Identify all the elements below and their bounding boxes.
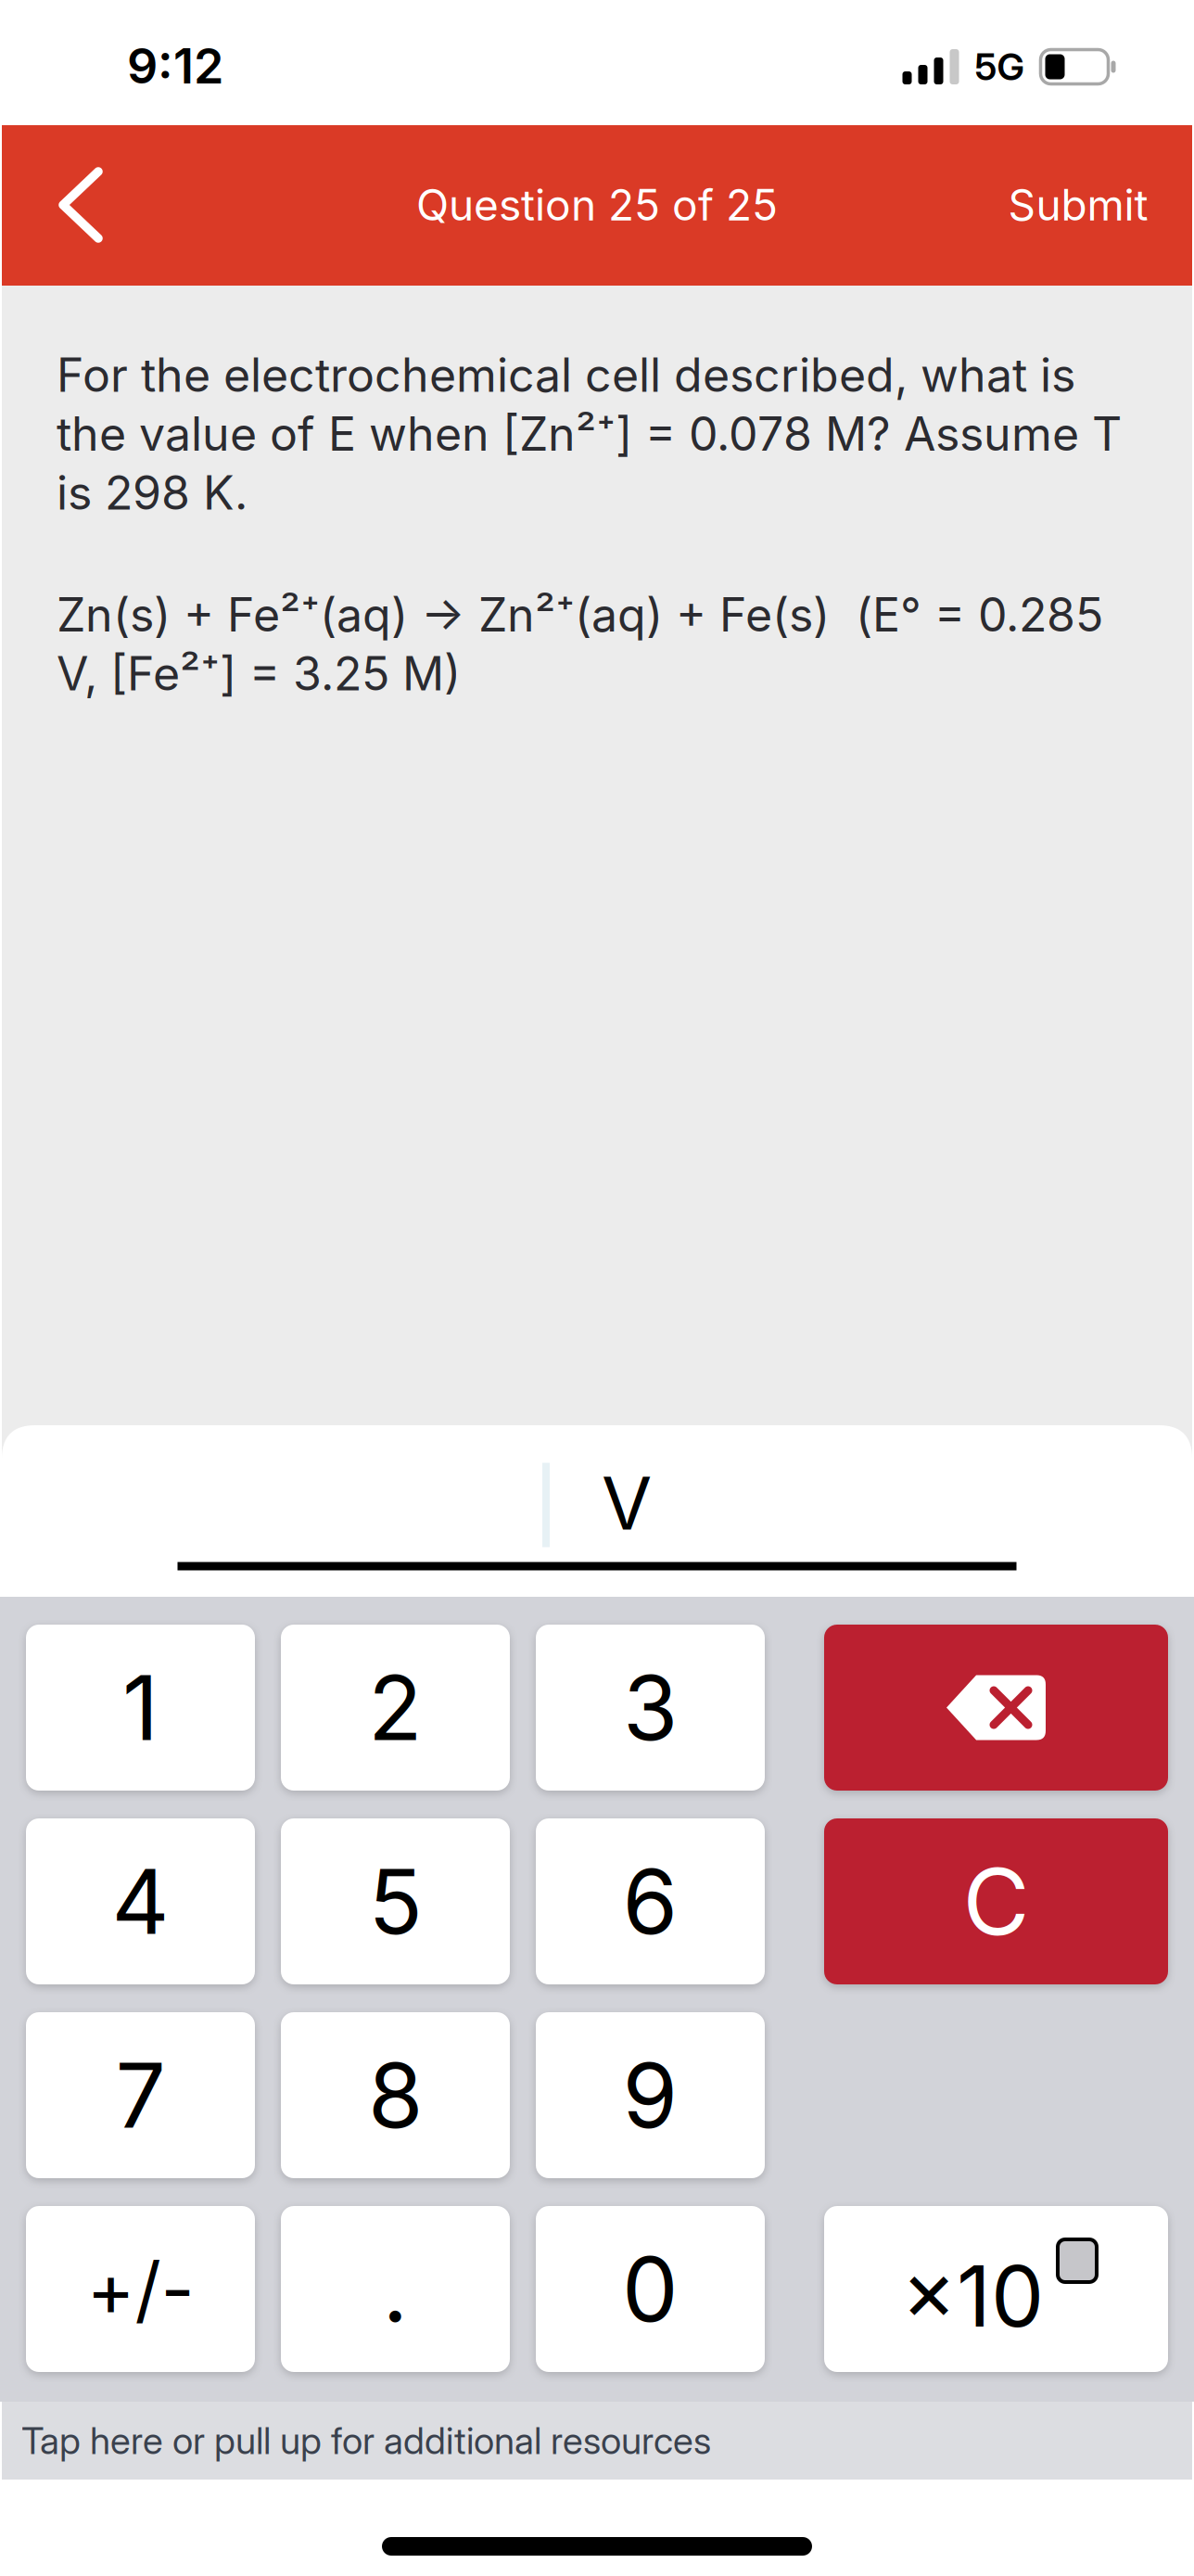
button[interactable]: Submit <box>2 125 1192 286</box>
button[interactable]: ×10 <box>824 2206 1168 2372</box>
button[interactable]: 1 <box>26 1625 255 1791</box>
button[interactable]: 5 <box>281 1818 510 1984</box>
staticText: 0 <box>622 2235 679 2343</box>
staticText: 3 <box>623 1654 678 1761</box>
staticText: 2 <box>368 1654 423 1761</box>
button[interactable]: . <box>281 2206 510 2372</box>
staticText: Zn(s) + Fe²⁺(aq) → Zn²⁺(aq) + Fe(s) (E° … <box>57 587 1103 701</box>
staticText: 5 <box>368 1848 422 1955</box>
button[interactable]: 2 <box>281 1625 510 1791</box>
staticText: Tap here or pull up for additional resou… <box>21 2418 711 2463</box>
staticText: ×10 <box>901 2245 1044 2347</box>
staticText: 4 <box>112 1848 169 1955</box>
staticText: 8 <box>368 2041 423 2149</box>
button[interactable]: 8 <box>281 2012 510 2178</box>
staticText: 7 <box>115 2041 165 2149</box>
button[interactable]: 4 <box>26 1818 255 1984</box>
button[interactable]: +/- <box>26 2206 255 2372</box>
button[interactable] <box>2 125 1192 286</box>
staticText: 9 <box>622 2041 678 2149</box>
staticText: 5G <box>975 44 1024 89</box>
staticText: Question 25 of 25 <box>416 179 778 231</box>
staticText: 6 <box>622 1848 678 1955</box>
button[interactable] <box>824 1625 1168 1791</box>
staticText: Submit <box>1008 179 1148 231</box>
staticText: C <box>963 1846 1029 1957</box>
staticText: . <box>382 2235 408 2343</box>
button[interactable]: Tap here or pull up for additional resou… <box>2 2402 1192 2480</box>
button[interactable]: 9 <box>536 2012 765 2178</box>
staticText: For the electrochemical cell described, … <box>57 347 1122 521</box>
button[interactable]: 3 <box>536 1625 765 1791</box>
button[interactable]: V <box>2 1425 1192 1597</box>
button[interactable]: 0 <box>536 2206 765 2372</box>
staticText: 9:12 <box>127 37 223 95</box>
staticText: V <box>602 1459 652 1547</box>
button[interactable]: 7 <box>26 2012 255 2178</box>
button[interactable]: C <box>824 1818 1168 1984</box>
staticText: 1 <box>122 1654 159 1761</box>
staticText: +/- <box>87 2245 194 2333</box>
button[interactable]: 6 <box>536 1818 765 1984</box>
